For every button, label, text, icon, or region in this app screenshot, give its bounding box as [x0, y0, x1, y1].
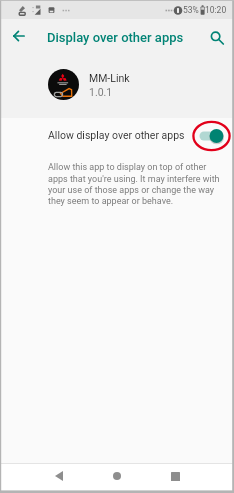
- button[interactable]: Back: [45, 463, 72, 489]
- staticText: 53%: [183, 5, 199, 15]
- staticText: 10:20: [205, 5, 227, 15]
- button[interactable]: Home: [103, 463, 130, 489]
- button[interactable]: Navigate up: [5, 22, 33, 50]
- staticText: Allow this app to display on top of othe…: [48, 162, 223, 206]
- staticText: MM-Link: [89, 72, 130, 84]
- button[interactable]: Allow display over other apps: [0, 118, 234, 155]
- staticText: 1.0.1: [89, 86, 113, 98]
- button[interactable]: Search: [202, 23, 231, 52]
- button[interactable]: Recent apps: [162, 463, 189, 489]
- staticText: Allow display over other apps: [48, 129, 185, 141]
- staticText: Display over other apps: [47, 30, 184, 45]
